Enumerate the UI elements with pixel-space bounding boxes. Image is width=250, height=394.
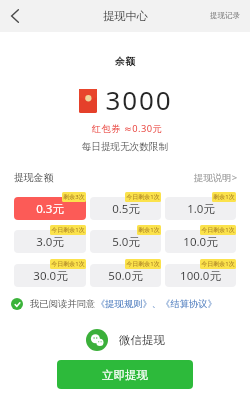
button[interactable]: 《提现规则》、《结算协议》	[96, 298, 217, 310]
staticText: 3.0元	[36, 234, 64, 250]
staticText: 提现中心	[103, 9, 148, 23]
staticText: 剩余3次	[63, 193, 85, 201]
staticText: 30.0元	[33, 268, 68, 284]
staticText: 提现金额	[14, 172, 54, 184]
button[interactable]: 10.0元	[165, 230, 236, 253]
staticText: 0.5元	[112, 201, 140, 217]
button[interactable]: 0.5元	[90, 197, 161, 220]
staticText: 立即提现	[102, 368, 148, 382]
staticText: 剩余1次	[213, 193, 235, 201]
staticText: 今日剩余1次	[201, 226, 235, 234]
staticText: 今日剩余1次	[126, 193, 160, 201]
staticText: 红包券 ≈0.30元	[2, 122, 250, 135]
staticText: 剩余1次	[138, 226, 160, 234]
staticText: 我已阅读并同意	[30, 298, 96, 310]
staticText: 3000	[105, 82, 173, 117]
button[interactable]: 微信提现	[0, 329, 250, 351]
button[interactable]: 50.0元	[90, 264, 161, 287]
staticText: 今日剩余1次	[51, 260, 85, 268]
staticText: 余额	[0, 55, 250, 68]
button[interactable]: 0.3元	[14, 197, 86, 220]
button[interactable]: 1.0元	[165, 197, 236, 220]
button[interactable]: 30.0元	[14, 264, 86, 287]
button[interactable]: Agree checkbox	[11, 298, 23, 310]
staticText: 1.0元	[187, 201, 215, 217]
button[interactable]: 5.0元	[90, 230, 161, 253]
staticText: 10.0元	[183, 234, 218, 250]
staticText: 今日剩余1次	[51, 226, 85, 234]
staticText: 今日剩余1次	[201, 260, 235, 268]
button[interactable]: 提现记录	[210, 11, 250, 20]
staticText: 50.0元	[108, 268, 143, 284]
staticText: 0.3元	[36, 201, 64, 217]
button[interactable]: 3.0元	[14, 230, 86, 253]
button[interactable]: 提现说明>	[194, 171, 237, 184]
staticText: 今日剩余1次	[126, 260, 160, 268]
staticText: 100.0元	[180, 268, 221, 284]
button[interactable]: 立即提现	[57, 360, 193, 389]
staticText: 微信提现	[119, 333, 165, 347]
button[interactable]: 100.0元	[165, 264, 236, 287]
staticText: 5.0元	[112, 234, 140, 250]
staticText: 每日提现无次数限制	[0, 141, 250, 153]
button[interactable]: Back	[0, 1, 30, 31]
